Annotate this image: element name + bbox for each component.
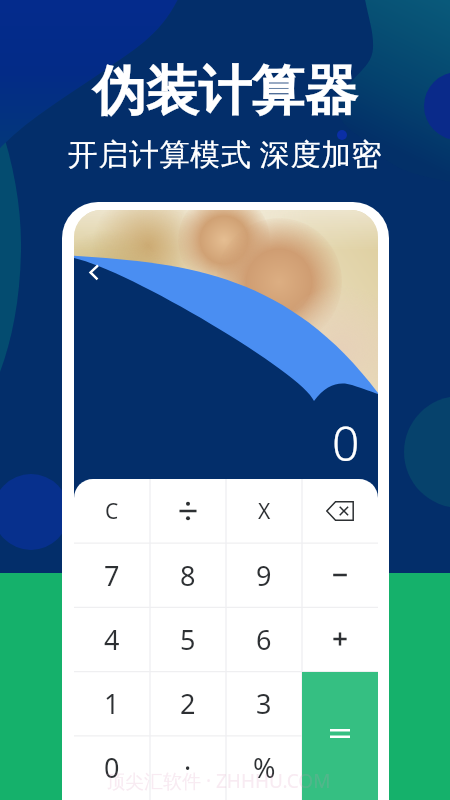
staticText: 0 bbox=[332, 410, 360, 475]
staticText: 6 bbox=[256, 621, 272, 658]
staticText: 4 bbox=[104, 621, 120, 658]
other: Equals bbox=[330, 729, 350, 738]
staticText: C bbox=[105, 497, 119, 526]
button[interactable]: 4 bbox=[74, 607, 150, 671]
staticText: 7 bbox=[104, 557, 120, 594]
button[interactable]: · bbox=[150, 735, 226, 799]
other: Backspace bbox=[326, 501, 354, 521]
staticText: X bbox=[258, 497, 271, 526]
staticText: 伪装计算器 bbox=[0, 58, 450, 125]
button[interactable]: 7 bbox=[74, 543, 150, 607]
button[interactable] bbox=[302, 671, 378, 735]
button[interactable]: 1 bbox=[74, 671, 150, 735]
other: Divide bbox=[175, 498, 201, 524]
button[interactable]: 9 bbox=[226, 543, 302, 607]
staticText: 开启计算模式 深度加密 bbox=[0, 133, 450, 174]
staticText: 3 bbox=[256, 685, 272, 722]
button[interactable]: Plus bbox=[302, 607, 378, 671]
other: Minus bbox=[327, 562, 353, 588]
button[interactable]: 6 bbox=[226, 607, 302, 671]
button[interactable]: 3 bbox=[226, 671, 302, 735]
staticText: 0 bbox=[104, 749, 120, 786]
button[interactable]: Divide bbox=[150, 479, 226, 543]
staticText: % bbox=[253, 749, 276, 786]
button[interactable]: Back bbox=[83, 261, 105, 283]
staticText: 9 bbox=[256, 557, 272, 594]
staticText: 8 bbox=[180, 557, 196, 594]
button[interactable]: Backspace bbox=[302, 479, 378, 543]
button[interactable]: 5 bbox=[150, 607, 226, 671]
staticText: · bbox=[184, 749, 192, 786]
staticText: 顶尖汇软件 · ZHHHU.COM bbox=[106, 768, 331, 794]
button[interactable] bbox=[302, 735, 378, 799]
staticText: 2 bbox=[180, 685, 196, 722]
button[interactable]: 8 bbox=[150, 543, 226, 607]
other: Plus bbox=[327, 626, 353, 652]
button[interactable]: 0 bbox=[74, 735, 150, 799]
button[interactable]: 2 bbox=[150, 671, 226, 735]
button[interactable]: Minus bbox=[302, 543, 378, 607]
staticText: 5 bbox=[180, 621, 196, 658]
staticText: 1 bbox=[104, 685, 120, 722]
button[interactable]: C bbox=[74, 479, 150, 543]
button[interactable]: % bbox=[226, 735, 302, 799]
button[interactable]: Equals bbox=[302, 672, 378, 800]
button[interactable]: X bbox=[226, 479, 302, 543]
